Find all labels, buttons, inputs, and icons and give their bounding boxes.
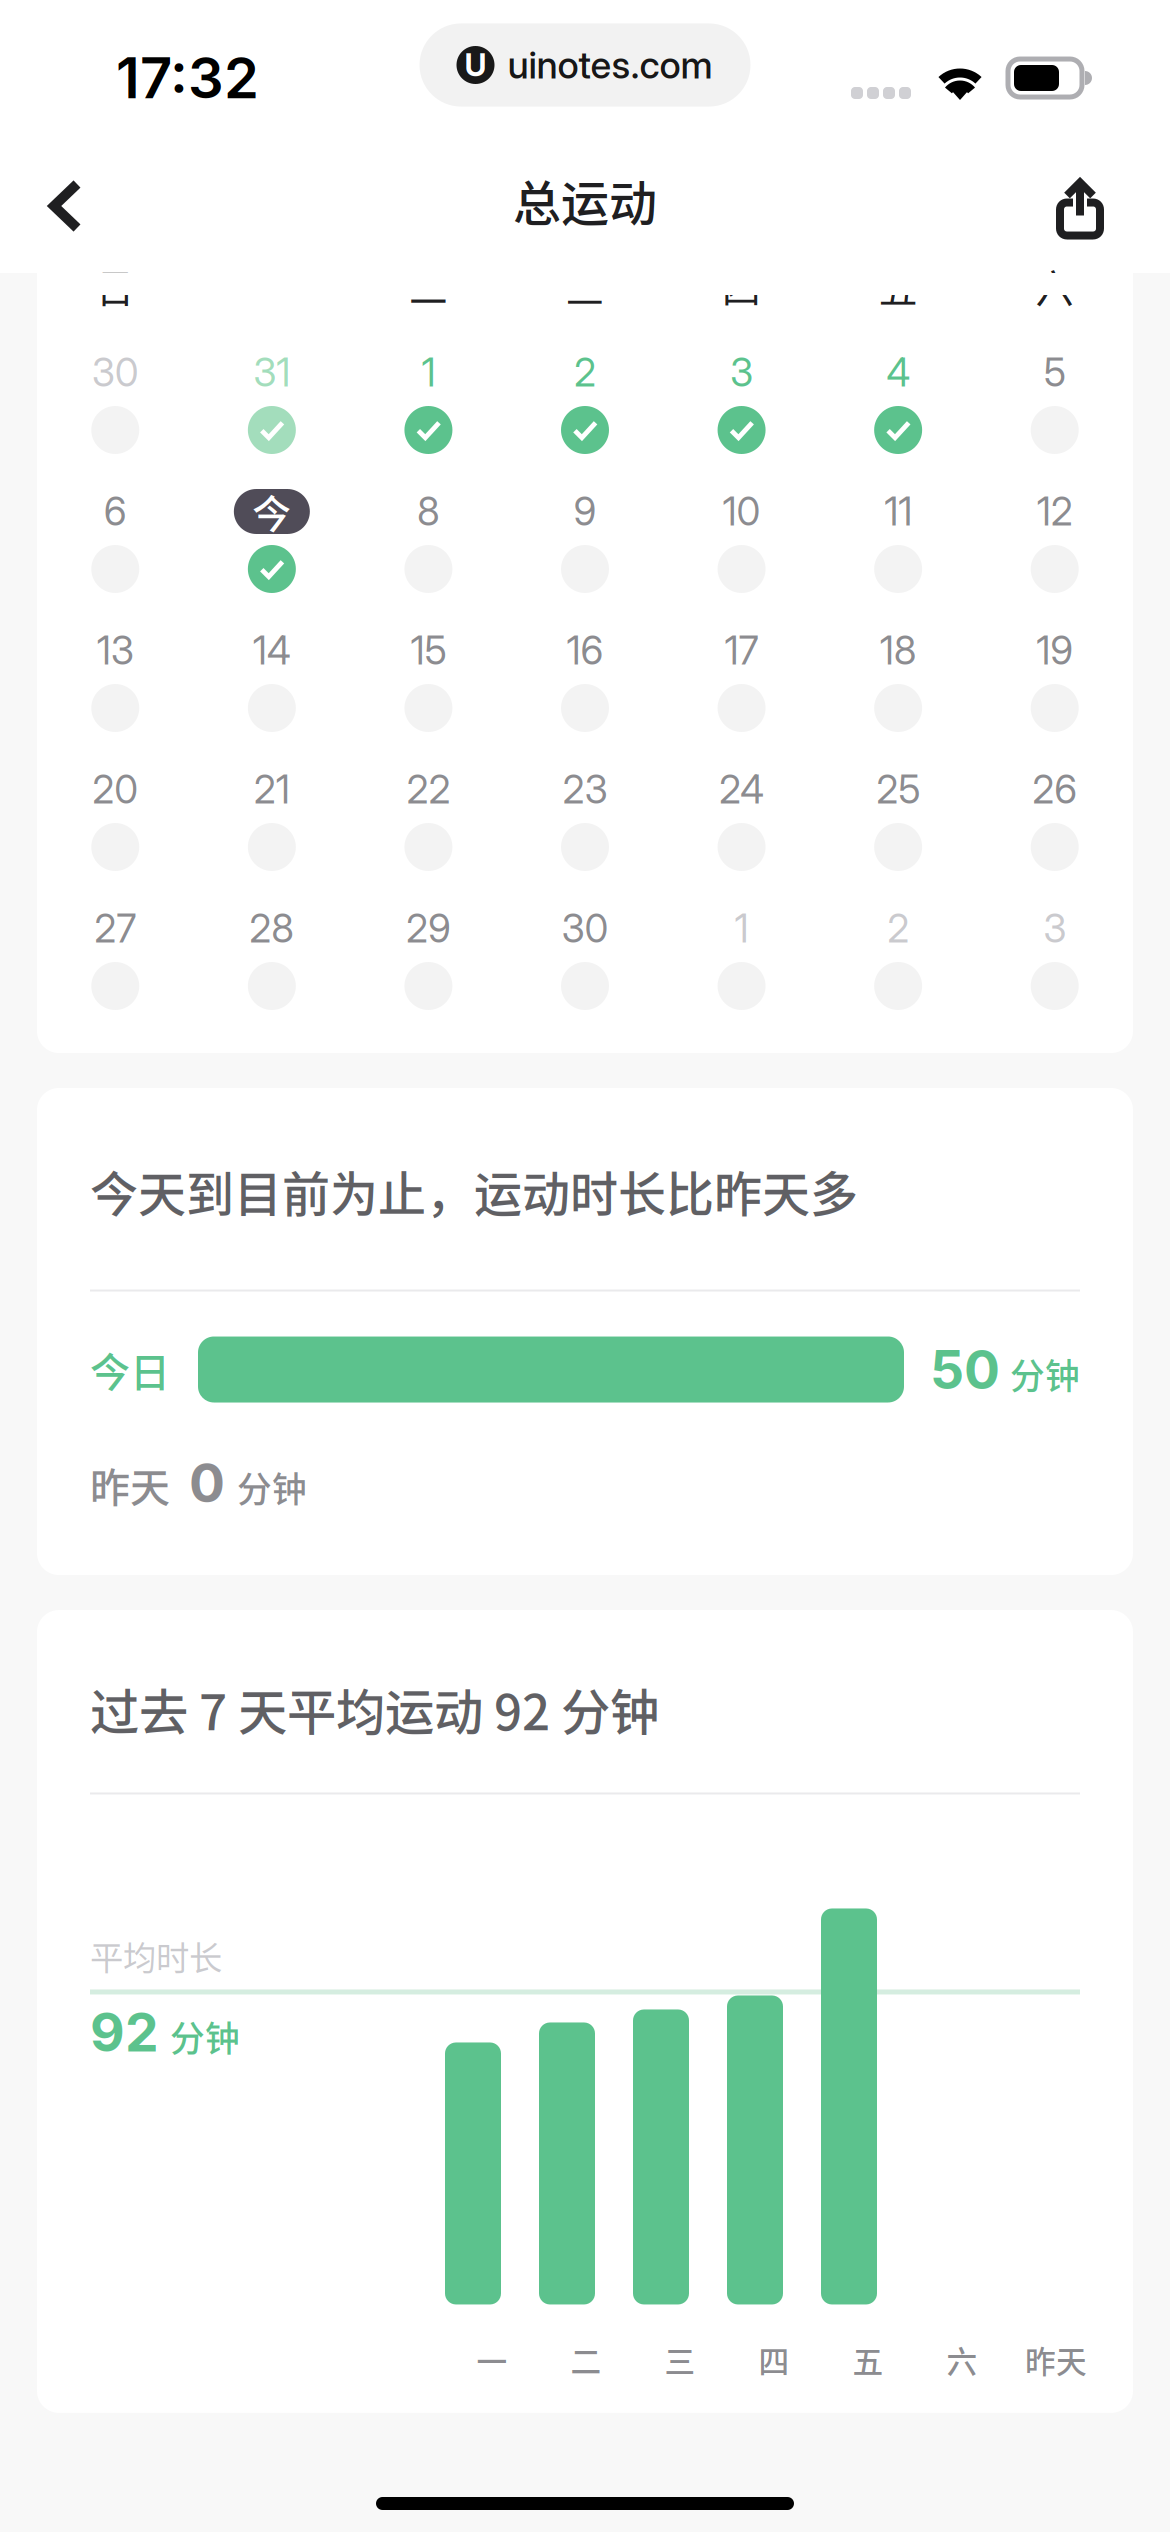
staticText: 2: [574, 349, 596, 396]
staticText: 昨天: [90, 1456, 170, 1514]
staticText: 总运动: [513, 165, 657, 235]
staticText: 四: [722, 258, 761, 314]
button[interactable]: Share: [1026, 142, 1170, 260]
staticText: 六: [1035, 258, 1074, 314]
staticText: 分钟: [237, 1462, 307, 1512]
staticText: 分钟: [170, 2011, 240, 2062]
staticText: 过去 7 天平均运动 92 分钟: [90, 1673, 659, 1744]
staticText: 18: [880, 627, 917, 674]
staticText: 27: [94, 905, 136, 952]
staticText: 2: [887, 905, 909, 952]
staticText: 昨天: [1025, 2337, 1087, 2382]
staticText: 9: [573, 488, 596, 535]
staticText: 今日: [90, 1340, 170, 1398]
staticText: 24: [719, 766, 764, 813]
staticText: 15: [410, 627, 446, 674]
staticText: 0: [189, 1450, 225, 1515]
staticText: 31: [253, 349, 290, 396]
staticText: 日: [96, 258, 135, 314]
staticText: 92: [90, 2000, 159, 2064]
staticText: 25: [876, 766, 920, 813]
staticText: 五: [879, 258, 918, 314]
staticText: uinotes.com: [507, 42, 712, 88]
staticText: 23: [562, 766, 607, 813]
staticText: 今天到目前为止，运动时长比昨天多: [90, 1156, 858, 1225]
staticText: 1: [421, 349, 435, 396]
staticText: 5: [1044, 349, 1066, 396]
staticText: 29: [406, 905, 451, 952]
staticText: 17:32: [116, 44, 259, 112]
staticText: U: [464, 46, 486, 83]
staticText: 分钟: [1010, 1349, 1080, 1399]
staticText: 10: [723, 488, 761, 535]
staticText: 50: [930, 1337, 1000, 1402]
staticText: 6: [104, 488, 127, 535]
staticText: 一: [476, 2337, 507, 2382]
staticText: 22: [406, 766, 450, 813]
staticText: 12: [1037, 488, 1073, 535]
staticText: 28: [249, 905, 294, 952]
staticText: 30: [561, 905, 608, 952]
staticText: 8: [417, 488, 440, 535]
staticText: 20: [92, 766, 138, 813]
staticText: 26: [1032, 766, 1077, 813]
staticText: 16: [566, 627, 603, 674]
staticText: 五: [852, 2337, 883, 2382]
button[interactable]: Back: [0, 144, 113, 259]
staticText: 30: [92, 349, 139, 396]
staticText: 今: [252, 483, 291, 539]
staticText: 三: [565, 258, 604, 314]
staticText: 平均时长: [90, 1932, 222, 1980]
staticText: 14: [253, 627, 291, 674]
staticText: 3: [1043, 905, 1066, 952]
staticText: 11: [884, 488, 912, 535]
staticText: 4: [886, 349, 910, 396]
staticText: 21: [254, 766, 290, 813]
staticText: 四: [758, 2337, 789, 2382]
staticText: 19: [1036, 627, 1073, 674]
staticText: 二: [570, 2337, 601, 2382]
staticText: 六: [946, 2337, 977, 2382]
staticText: 三: [664, 2337, 695, 2382]
staticText: 3: [730, 349, 753, 396]
staticText: 17: [725, 627, 759, 674]
staticText: 13: [97, 627, 134, 674]
staticText: 1: [735, 905, 749, 952]
staticText: 二: [409, 258, 448, 314]
